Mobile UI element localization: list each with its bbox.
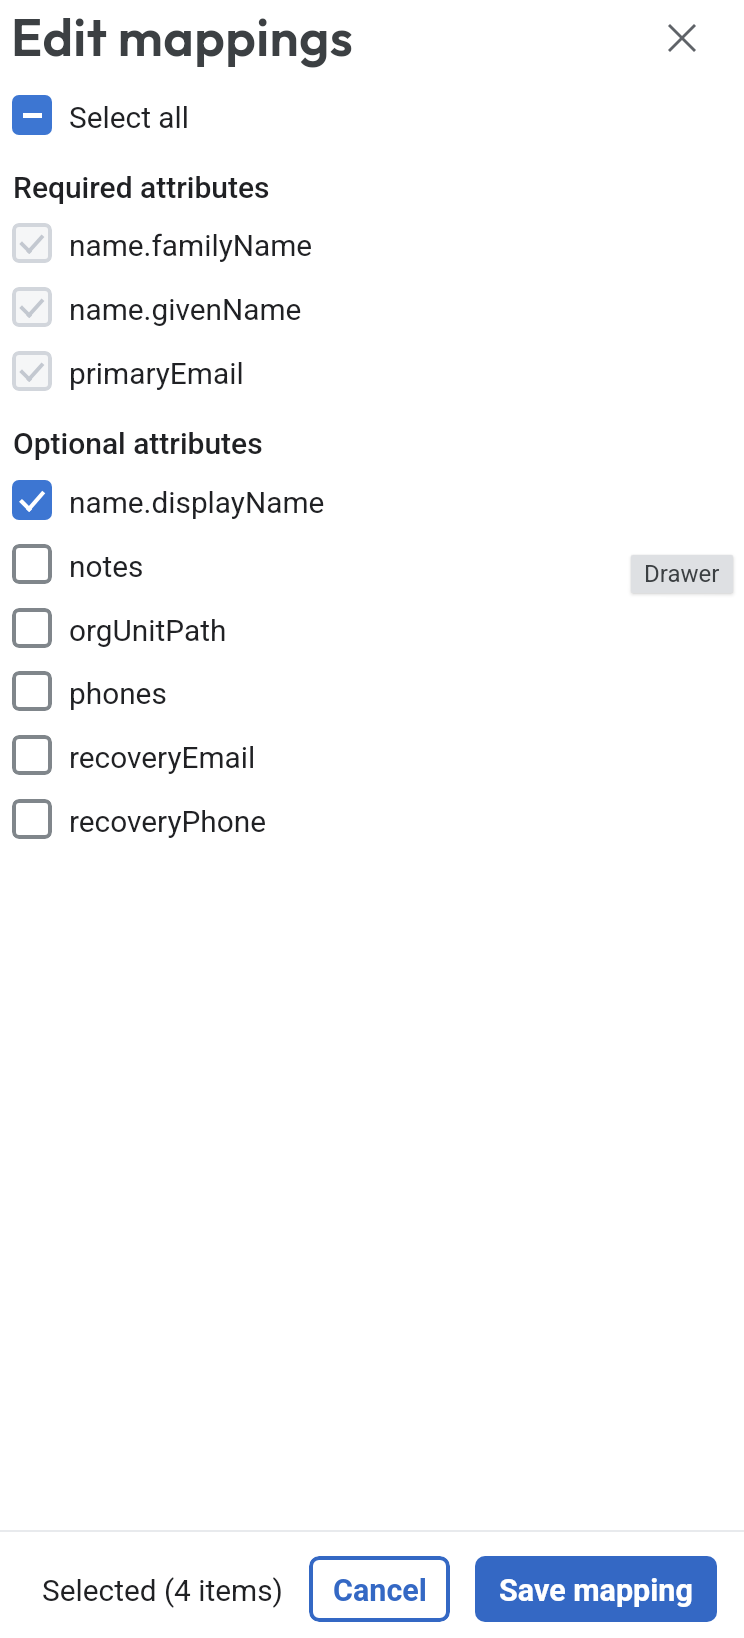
- button[interactable]: recoveryEmail: [0, 723, 744, 787]
- button[interactable]: Cancel: [309, 1556, 450, 1622]
- button[interactable]: Save mapping: [475, 1556, 717, 1622]
- staticText: Drawer: [644, 560, 720, 588]
- staticText: Optional attributes: [13, 426, 263, 461]
- staticText: name.familyName: [69, 228, 313, 263]
- button[interactable]: name.familyName: [0, 211, 744, 275]
- button[interactable]: phones: [0, 659, 744, 723]
- button[interactable]: Drawer: [631, 555, 733, 593]
- button[interactable]: orgUnitPath: [0, 596, 744, 660]
- button[interactable]: Close: [660, 16, 704, 60]
- staticText: name.displayName: [69, 485, 325, 520]
- staticText: primaryEmail: [69, 356, 244, 391]
- button[interactable]: notes: [0, 532, 744, 596]
- button[interactable]: recoveryPhone: [0, 787, 744, 851]
- staticText: name.givenName: [69, 292, 302, 327]
- staticText: phones: [69, 676, 167, 711]
- staticText: Selected (4 items): [42, 1573, 283, 1608]
- staticText: orgUnitPath: [69, 613, 227, 648]
- staticText: Select all: [69, 100, 189, 135]
- staticText: Edit mappings: [11, 4, 354, 70]
- staticText: Cancel: [333, 1573, 427, 1609]
- staticText: notes: [69, 549, 144, 584]
- button[interactable]: name.givenName: [0, 275, 744, 339]
- staticText: recoveryEmail: [69, 740, 256, 775]
- button[interactable]: name.displayName: [0, 468, 744, 532]
- button[interactable]: primaryEmail: [0, 339, 744, 403]
- staticText: Save mapping: [499, 1573, 693, 1609]
- staticText: recoveryPhone: [69, 804, 266, 839]
- button[interactable]: Select all: [0, 83, 744, 147]
- staticText: Required attributes: [13, 170, 270, 205]
